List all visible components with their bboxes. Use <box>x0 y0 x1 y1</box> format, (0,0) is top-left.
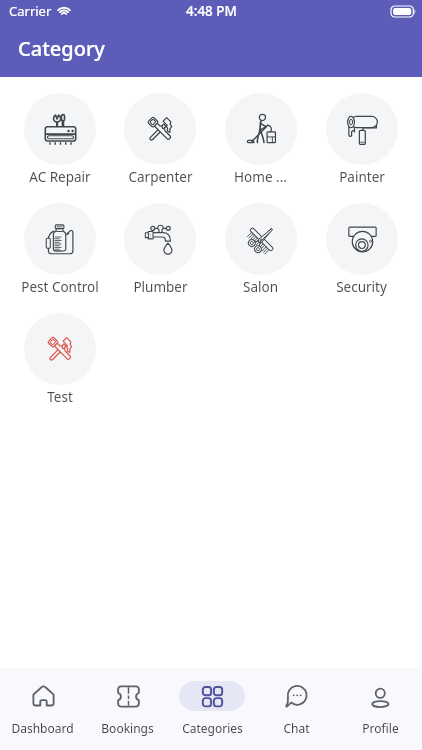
staticText: Category <box>18 35 105 62</box>
button[interactable]: Security <box>311 203 412 296</box>
staticText: Test <box>47 388 73 406</box>
staticText: Salon <box>243 278 278 296</box>
other: Bookings <box>95 681 161 711</box>
staticText: Security <box>336 278 387 296</box>
button[interactable]: Bookings <box>85 668 170 736</box>
staticText: Dashboard <box>11 720 74 736</box>
staticText: Painter <box>339 168 385 186</box>
staticText: Plumber <box>133 278 188 296</box>
staticText: Bookings <box>101 720 154 736</box>
staticText: Carrier <box>9 2 52 20</box>
button[interactable]: Categories <box>170 668 254 736</box>
staticText: Profile <box>362 720 399 736</box>
button[interactable]: Salon <box>210 203 311 296</box>
other: Chat <box>263 681 329 711</box>
button[interactable]: Chat <box>254 668 338 736</box>
button[interactable]: Pest Control <box>10 203 110 296</box>
button[interactable]: Painter <box>311 93 412 186</box>
button[interactable]: Dashboard <box>0 668 85 736</box>
staticText: Home ... <box>234 168 287 186</box>
button[interactable]: AC Repair <box>10 93 110 186</box>
button[interactable]: Carpenter <box>110 93 210 186</box>
staticText: Chat <box>283 720 310 736</box>
button[interactable]: Plumber <box>110 203 210 296</box>
other: Profile <box>347 681 413 711</box>
staticText: Pest Control <box>21 278 99 296</box>
other: Categories <box>179 681 245 711</box>
staticText: Categories <box>182 720 243 736</box>
staticText: 4:48 PM <box>186 2 237 20</box>
button[interactable]: Profile <box>338 668 422 736</box>
staticText: Carpenter <box>128 168 193 186</box>
button[interactable]: Home ... <box>210 93 311 186</box>
staticText: AC Repair <box>29 168 91 186</box>
button[interactable]: Test <box>10 313 110 406</box>
other: Dashboard <box>10 681 76 711</box>
